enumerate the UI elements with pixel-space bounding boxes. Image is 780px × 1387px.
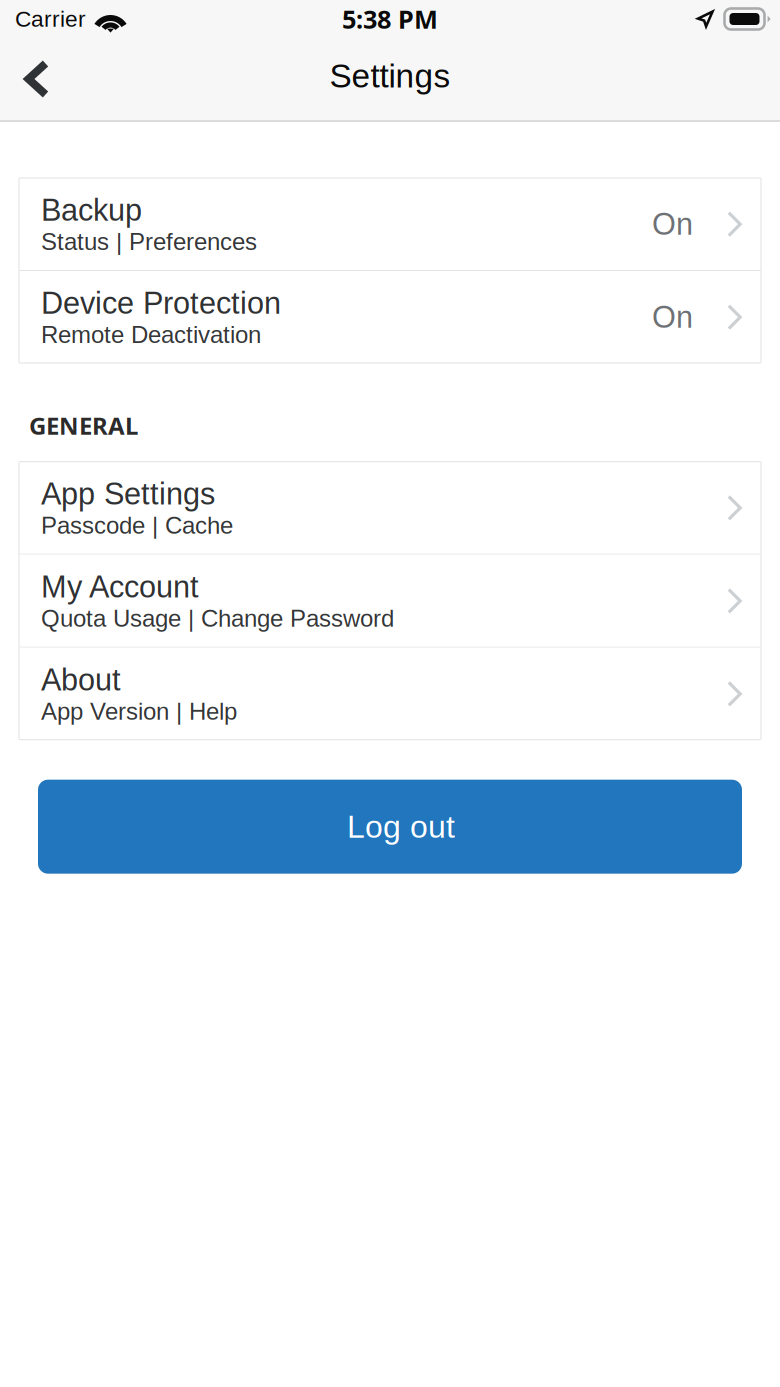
staticText: About [41, 663, 121, 697]
staticText: On [652, 300, 693, 334]
staticText: On [652, 207, 693, 241]
button[interactable]: Backup [19, 178, 761, 270]
staticText: Passcode | Cache [41, 512, 233, 539]
button[interactable]: App Settings [19, 462, 761, 554]
staticText: Log out [347, 809, 455, 845]
staticText: Quota Usage | Change Password [41, 605, 394, 632]
staticText: Settings [329, 57, 450, 95]
staticText: App Version | Help [41, 698, 237, 725]
staticText: Backup [41, 193, 142, 227]
staticText: Remote Deactivation [41, 321, 261, 348]
staticText: Carrier [15, 6, 86, 32]
staticText: App Settings [41, 477, 215, 511]
staticText: GENERAL [29, 409, 138, 442]
button[interactable]: Device Protection [19, 271, 761, 363]
staticText: 5:38 PM [342, 2, 438, 36]
button[interactable]: Log out [38, 780, 742, 874]
button[interactable]: Back [0, 40, 74, 117]
staticText: My Account [41, 570, 199, 604]
staticText: Device Protection [41, 286, 281, 320]
staticText: Status | Preferences [41, 228, 257, 255]
button[interactable]: My Account [19, 555, 761, 647]
button[interactable]: About [19, 648, 761, 740]
